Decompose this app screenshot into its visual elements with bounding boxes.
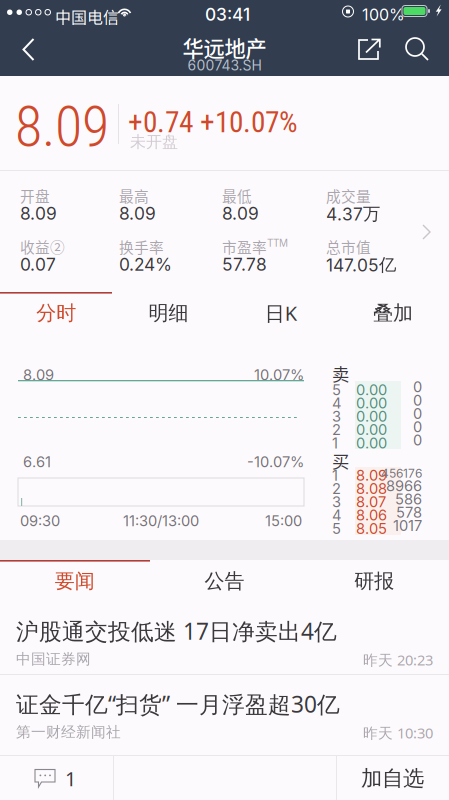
staticText: 10.07% <box>254 366 304 384</box>
button[interactable]: Search <box>396 25 439 74</box>
staticText: 0.00 <box>356 381 387 393</box>
staticText: 578 <box>396 503 422 521</box>
staticText: 5 <box>332 381 341 393</box>
staticText: 5 <box>332 520 341 532</box>
staticText: 华远地产 <box>182 32 266 63</box>
staticText: 未开盘 <box>130 132 178 152</box>
staticText: 1 <box>332 434 338 446</box>
staticText: 要闻 <box>55 569 95 593</box>
staticText: 0 <box>413 391 422 409</box>
staticText: 卖 <box>332 361 349 386</box>
staticText: 加自选 <box>361 765 424 792</box>
button[interactable]: Share <box>348 25 391 74</box>
staticText: 叠加 <box>373 301 413 325</box>
staticText: 明细 <box>148 301 188 325</box>
staticText: 分时 <box>36 301 76 325</box>
button[interactable]: 1 <box>0 756 113 800</box>
staticText: 日K <box>265 300 297 326</box>
staticText: 0.00 <box>356 394 387 406</box>
staticText: 开盘 <box>20 185 50 206</box>
button[interactable]: 分时 <box>0 292 112 334</box>
staticText: 600743.SH <box>187 57 261 74</box>
staticText: 0.00 <box>356 408 387 420</box>
button[interactable]: 要闻 <box>0 560 150 602</box>
staticText: 147.05亿 <box>326 254 396 276</box>
staticText: 4 <box>332 394 341 406</box>
staticText: +0.74 +10.07% <box>128 105 298 139</box>
button[interactable]: 明细 <box>112 292 224 334</box>
staticText: 0 <box>413 418 422 436</box>
staticText: 0.00 <box>356 434 387 446</box>
staticText: 中国电信 <box>55 5 119 28</box>
staticText: 昨天 10:30 <box>363 723 433 742</box>
staticText: 沪股通交投低迷 17日净卖出4亿 <box>16 616 337 646</box>
staticText: 3 <box>332 408 341 420</box>
staticText: 8.09 <box>119 203 156 224</box>
staticText: 100% <box>362 5 405 24</box>
staticText: 8966 <box>386 477 422 495</box>
staticText: 收益② <box>20 236 65 257</box>
staticText: 1 <box>65 765 76 792</box>
button[interactable]: 公告 <box>150 560 299 602</box>
staticText: 57.78 <box>222 254 267 275</box>
staticText: 1017 <box>393 517 422 534</box>
staticText: 0 <box>413 378 422 396</box>
staticText: 市盈率 <box>222 236 267 257</box>
staticText: 03:41 <box>205 4 250 25</box>
staticText: 8.09 <box>222 203 259 224</box>
staticText: 8.09 <box>20 203 57 224</box>
staticText: 研报 <box>354 569 394 593</box>
button[interactable]: 沪股通交投低迷 17日净卖出4亿 <box>0 602 449 674</box>
staticText: 6.61 <box>23 453 51 471</box>
staticText: 证金千亿“扫货” 一月浮盈超30亿 <box>16 689 340 719</box>
staticText: 09:30 <box>20 512 60 530</box>
staticText: 公告 <box>204 569 244 593</box>
staticText: 0 <box>413 405 422 422</box>
staticText: -10.07% <box>247 453 304 471</box>
staticText: 15:00 <box>265 512 302 530</box>
staticText: 11:30/13:00 <box>123 512 199 530</box>
staticText: 第一财经新闻社 <box>16 723 121 741</box>
staticText: 456176 <box>381 466 422 481</box>
staticText: 8.07 <box>356 493 386 505</box>
staticText: 2 <box>332 480 341 492</box>
button[interactable]: Back <box>7 25 50 74</box>
staticText: 8.09 <box>356 466 387 478</box>
staticText: 0.07 <box>20 254 56 275</box>
staticText: 8.08 <box>356 480 387 492</box>
staticText: 最高 <box>119 185 149 206</box>
staticText: 1 <box>332 466 338 478</box>
staticText: 8.05 <box>356 520 387 532</box>
staticText: 0.24% <box>119 254 172 275</box>
staticText: 买 <box>332 448 349 473</box>
staticText: 4 <box>332 506 341 518</box>
staticText: 8.09 <box>15 94 109 160</box>
staticText: 0.00 <box>356 421 387 433</box>
staticText: 换手率 <box>119 236 164 257</box>
button[interactable]: 证金千亿“扫货” 一月浮盈超30亿 <box>0 675 449 747</box>
staticText: 最低 <box>222 185 252 206</box>
button[interactable]: 研报 <box>299 560 449 602</box>
staticText: 总市值 <box>326 236 371 257</box>
button[interactable]: 加自选 <box>336 756 449 800</box>
staticText: 昨天 20:23 <box>363 650 433 669</box>
staticText: 8.09 <box>23 366 54 384</box>
staticText: 3 <box>332 493 341 505</box>
staticText: 成交量 <box>326 185 371 206</box>
staticText: 8.06 <box>356 506 387 518</box>
staticText: TTM <box>267 237 288 249</box>
staticText: 0 <box>413 431 422 449</box>
staticText: 2 <box>332 421 341 433</box>
button[interactable]: 叠加 <box>337 292 449 334</box>
staticText: 4.37万 <box>326 203 380 225</box>
button[interactable]: 日K <box>224 292 337 334</box>
staticText: 中国证券网 <box>16 650 91 668</box>
staticText: 586 <box>395 490 422 508</box>
